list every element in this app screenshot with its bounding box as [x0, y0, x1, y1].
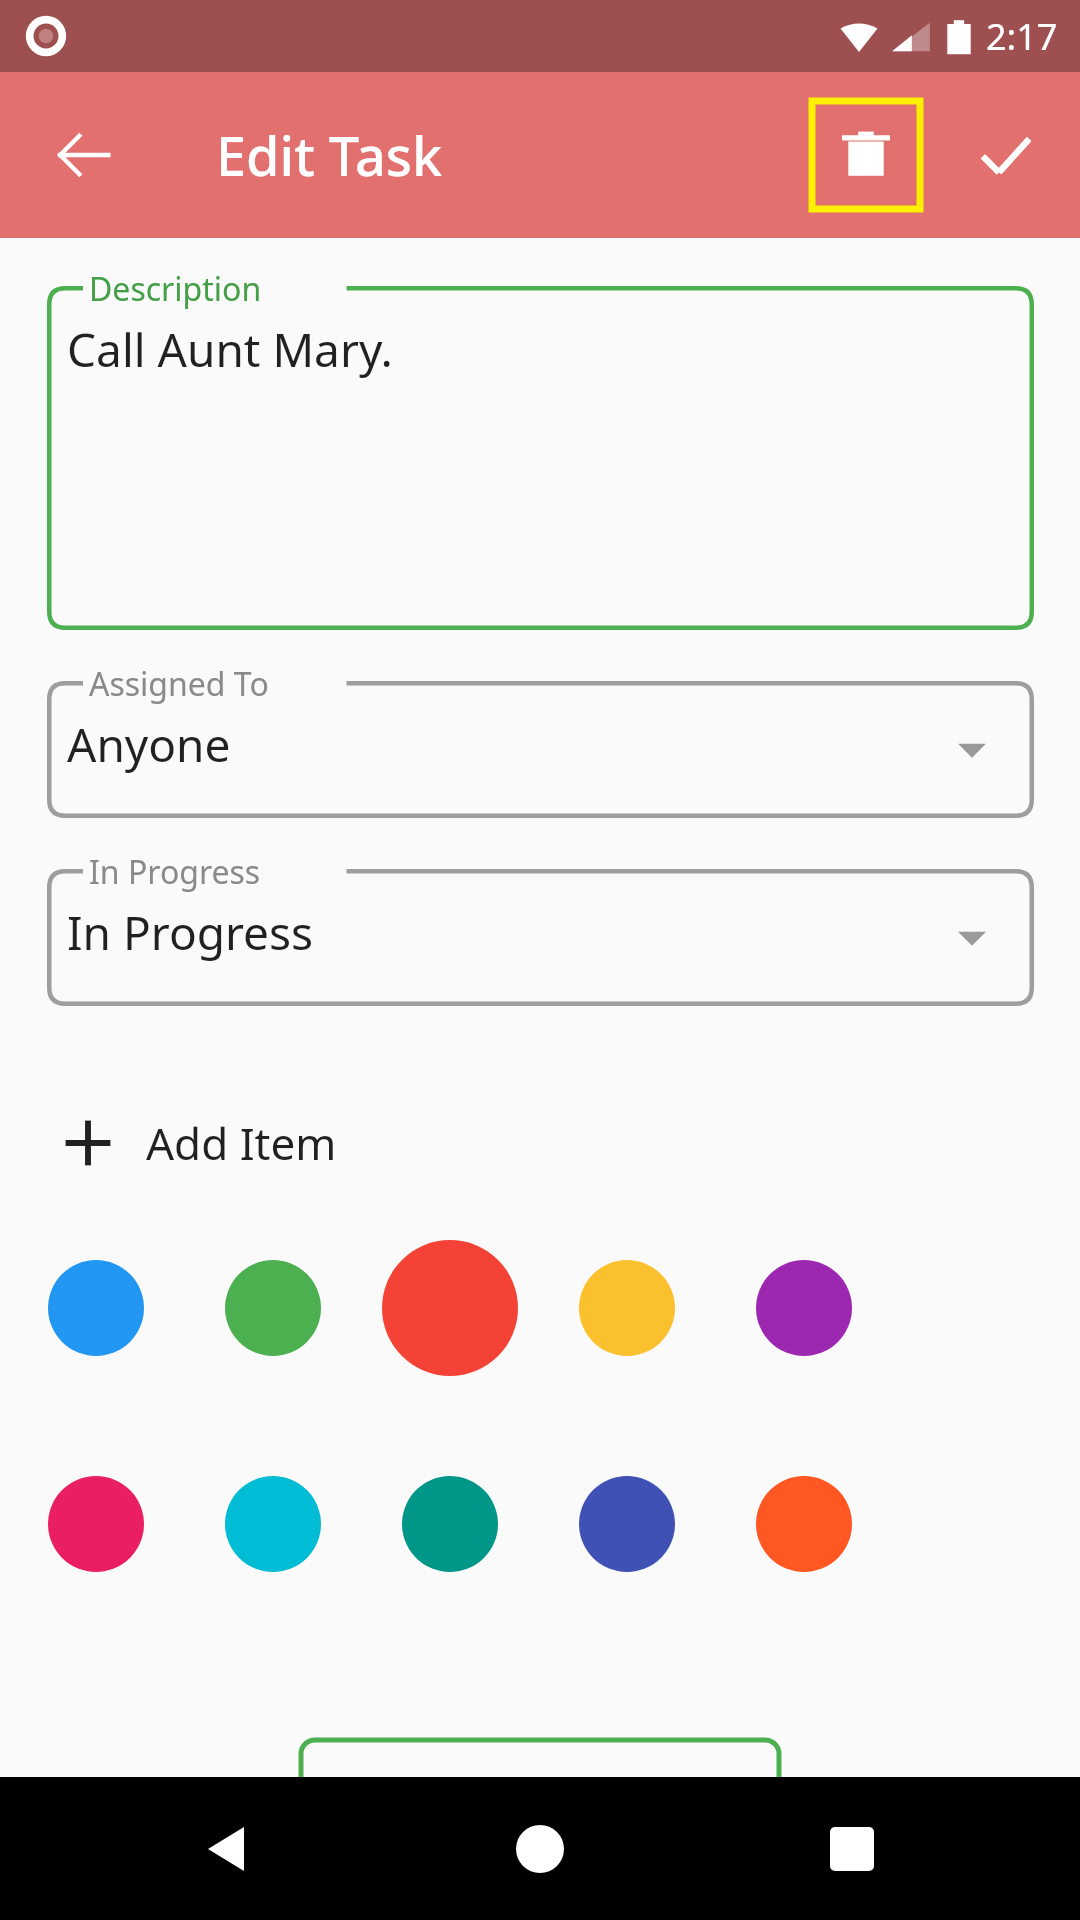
button[interactable]: Color swatch — [48, 1476, 144, 1572]
staticText: Edit Task — [216, 118, 443, 192]
button[interactable]: In Progress — [47, 869, 1034, 1006]
button[interactable]: Back — [180, 1801, 276, 1897]
button[interactable]: Recent apps — [804, 1801, 900, 1897]
button[interactable]: Color swatch — [225, 1260, 321, 1356]
button[interactable]: Color swatch — [579, 1260, 675, 1356]
button[interactable]: Assigned To — [47, 681, 1034, 818]
button[interactable]: Color swatch — [579, 1476, 675, 1572]
button[interactable]: Color swatch — [225, 1476, 321, 1572]
button[interactable]: Description — [47, 286, 1034, 630]
button[interactable]: Color swatch — [48, 1260, 144, 1356]
staticText: Call Aunt Mary. — [67, 318, 393, 381]
button[interactable]: Add Item — [60, 1088, 440, 1198]
button[interactable]: Home — [492, 1801, 588, 1897]
staticText: In Progress — [67, 901, 314, 964]
staticText: Add Item — [146, 1113, 337, 1173]
button[interactable]: Color swatch — [382, 1240, 518, 1376]
staticText: Anyone — [67, 713, 231, 776]
button[interactable]: Color swatch — [756, 1476, 852, 1572]
staticText: In Progress — [89, 850, 261, 894]
button[interactable]: Save — [952, 101, 1060, 209]
staticText: Assigned To — [89, 662, 269, 706]
button[interactable]: Color swatch — [402, 1476, 498, 1572]
staticText: 2:17 — [986, 12, 1058, 61]
button[interactable]: Back — [30, 101, 138, 209]
button[interactable]: Color swatch — [756, 1260, 852, 1356]
staticText: Description — [89, 267, 262, 311]
button[interactable] — [299, 1738, 781, 1858]
button[interactable]: Delete — [812, 101, 920, 209]
